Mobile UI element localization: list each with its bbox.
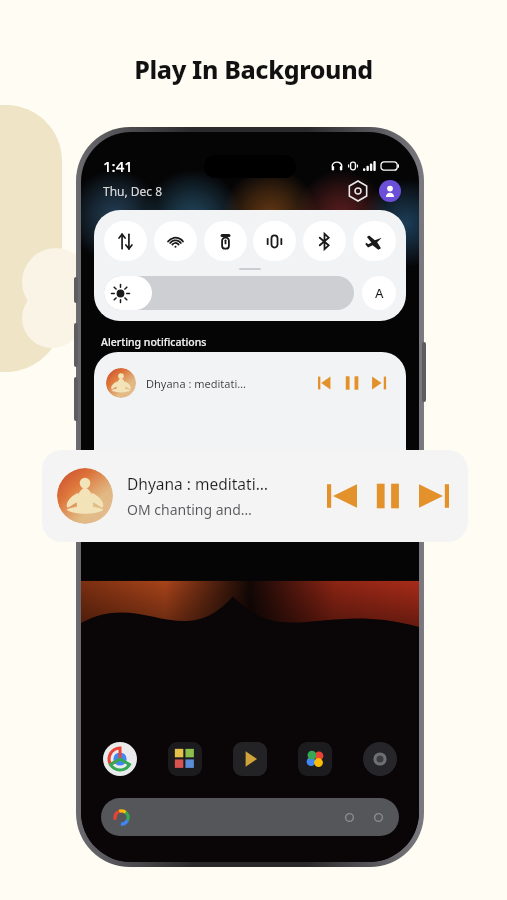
staticText: 1:41 <box>103 156 133 176</box>
button[interactable]: Airplane mode <box>353 221 396 261</box>
staticText: Thu, Dec 8 <box>103 183 163 199</box>
button[interactable]: App <box>103 742 137 776</box>
button[interactable]: Auto brightness <box>362 276 396 310</box>
button[interactable]: Vibrate <box>253 221 296 261</box>
button[interactable] <box>104 276 354 310</box>
button[interactable]: Wi-Fi <box>154 221 197 261</box>
button[interactable]: App <box>363 742 397 776</box>
staticText: A <box>375 284 384 302</box>
button[interactable]: Bluetooth <box>303 221 346 261</box>
button[interactable]: App <box>298 742 332 776</box>
button[interactable]: Settings <box>347 180 369 202</box>
button[interactable]: Next track <box>415 477 453 515</box>
button[interactable]: Account <box>379 180 401 202</box>
staticText: Expand notification <box>108 482 222 498</box>
staticText: Dhyana : meditati… <box>127 473 268 494</box>
button[interactable]: Internet <box>104 221 147 261</box>
button[interactable]: Dhyana : meditati… <box>106 352 394 414</box>
button[interactable]: Vanced microG • now <box>108 462 392 502</box>
button[interactable]: App <box>168 742 202 776</box>
button[interactable]: App <box>233 742 267 776</box>
staticText: Dhyana : meditati… <box>146 376 246 391</box>
staticText: OM chanting and… <box>127 500 252 519</box>
button[interactable] <box>101 798 399 836</box>
staticText: Play In Background <box>0 52 507 86</box>
staticText: Alerting notifications <box>101 335 207 349</box>
button[interactable]: Pause <box>369 477 407 515</box>
button[interactable]: Dhyana : meditati… <box>42 450 468 542</box>
button[interactable]: Flashlight <box>204 221 247 261</box>
button[interactable]: Previous track <box>323 477 361 515</box>
